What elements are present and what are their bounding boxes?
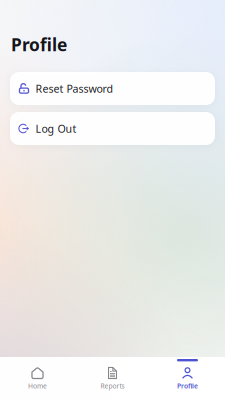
staticText: Reset Password — [35, 81, 113, 96]
button[interactable]: Home — [0, 357, 75, 400]
staticText: Profile — [11, 33, 67, 56]
button[interactable]: Reports — [75, 357, 150, 400]
button[interactable]: Reset Password — [10, 72, 215, 105]
staticText: Reports — [100, 382, 124, 390]
staticText: Home — [28, 382, 47, 390]
staticText: Profile — [177, 382, 198, 390]
button[interactable]: Log Out — [10, 112, 215, 145]
button[interactable]: Profile — [150, 357, 225, 400]
staticText: Log Out — [35, 121, 76, 136]
